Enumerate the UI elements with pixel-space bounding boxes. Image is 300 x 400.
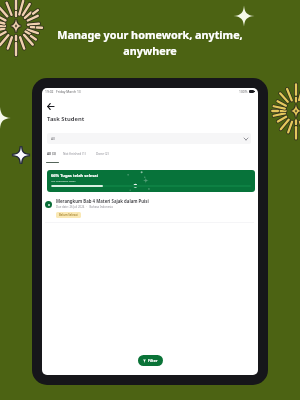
staticText: Merangkum Bab 4 Materi Sajak dalam Puisi [56,198,149,204]
button[interactable]: Back [44,100,56,112]
staticText: 100% [239,89,248,93]
staticText: Not finished (1) [63,152,86,156]
button[interactable]: All (3) [47,152,56,156]
button[interactable]: Not finished (1) [63,152,86,156]
button[interactable]: 66% Tugas telah selesai [47,170,255,192]
staticText: Belum Selesai [59,213,78,217]
button[interactable]: Done (2) [96,152,109,156]
staticText: Task Student [47,115,85,123]
staticText: All (3) [47,152,56,156]
staticText: Filter [148,358,158,363]
staticText: Done (2) [96,152,109,156]
staticText: Due date: 26 Juli 2024 · Bahasa Indonesi… [56,205,113,209]
staticText: Manage your homework, anytime, anywhere [0,27,300,58]
button[interactable]: Filter [138,355,163,366]
button[interactable]: All [47,133,251,144]
staticText: 66% Tugas telah selesai [51,173,98,178]
staticText: All [51,136,55,141]
staticText: Ayo selesaikan tugas [51,179,76,182]
staticText: 19:02 Friday March 13 [45,89,81,93]
button[interactable]: Merangkum Bab 4 Materi Sajak dalam Puisi [42,198,258,223]
